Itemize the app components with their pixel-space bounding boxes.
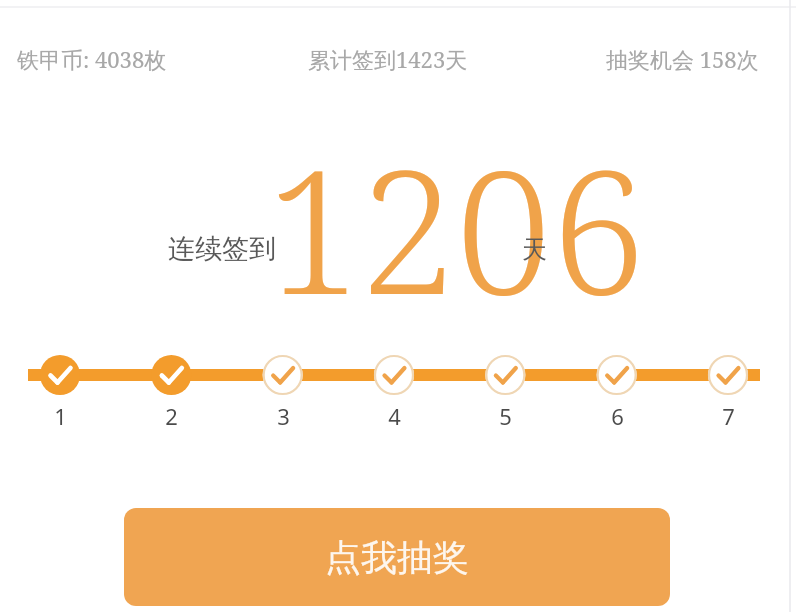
staticText: 1206 <box>266 112 647 344</box>
button[interactable]: 点我抽奖 <box>124 508 670 606</box>
staticText: 1 <box>54 401 67 431</box>
staticText: 7 <box>722 401 735 431</box>
staticText: 点我抽奖 <box>325 535 469 580</box>
staticText: 6 <box>611 401 624 431</box>
staticText: 抽奖机会 158次 <box>606 44 759 74</box>
staticText: 累计签到1423天 <box>308 44 468 74</box>
staticText: 5 <box>499 401 512 431</box>
staticText: 3 <box>277 401 290 431</box>
staticText: 连续签到 <box>168 232 276 266</box>
staticText: 天 <box>522 234 547 265</box>
staticText: 4 <box>388 401 401 431</box>
staticText: 铁甲币: 4038枚 <box>17 44 167 74</box>
staticText: 2 <box>165 401 178 431</box>
